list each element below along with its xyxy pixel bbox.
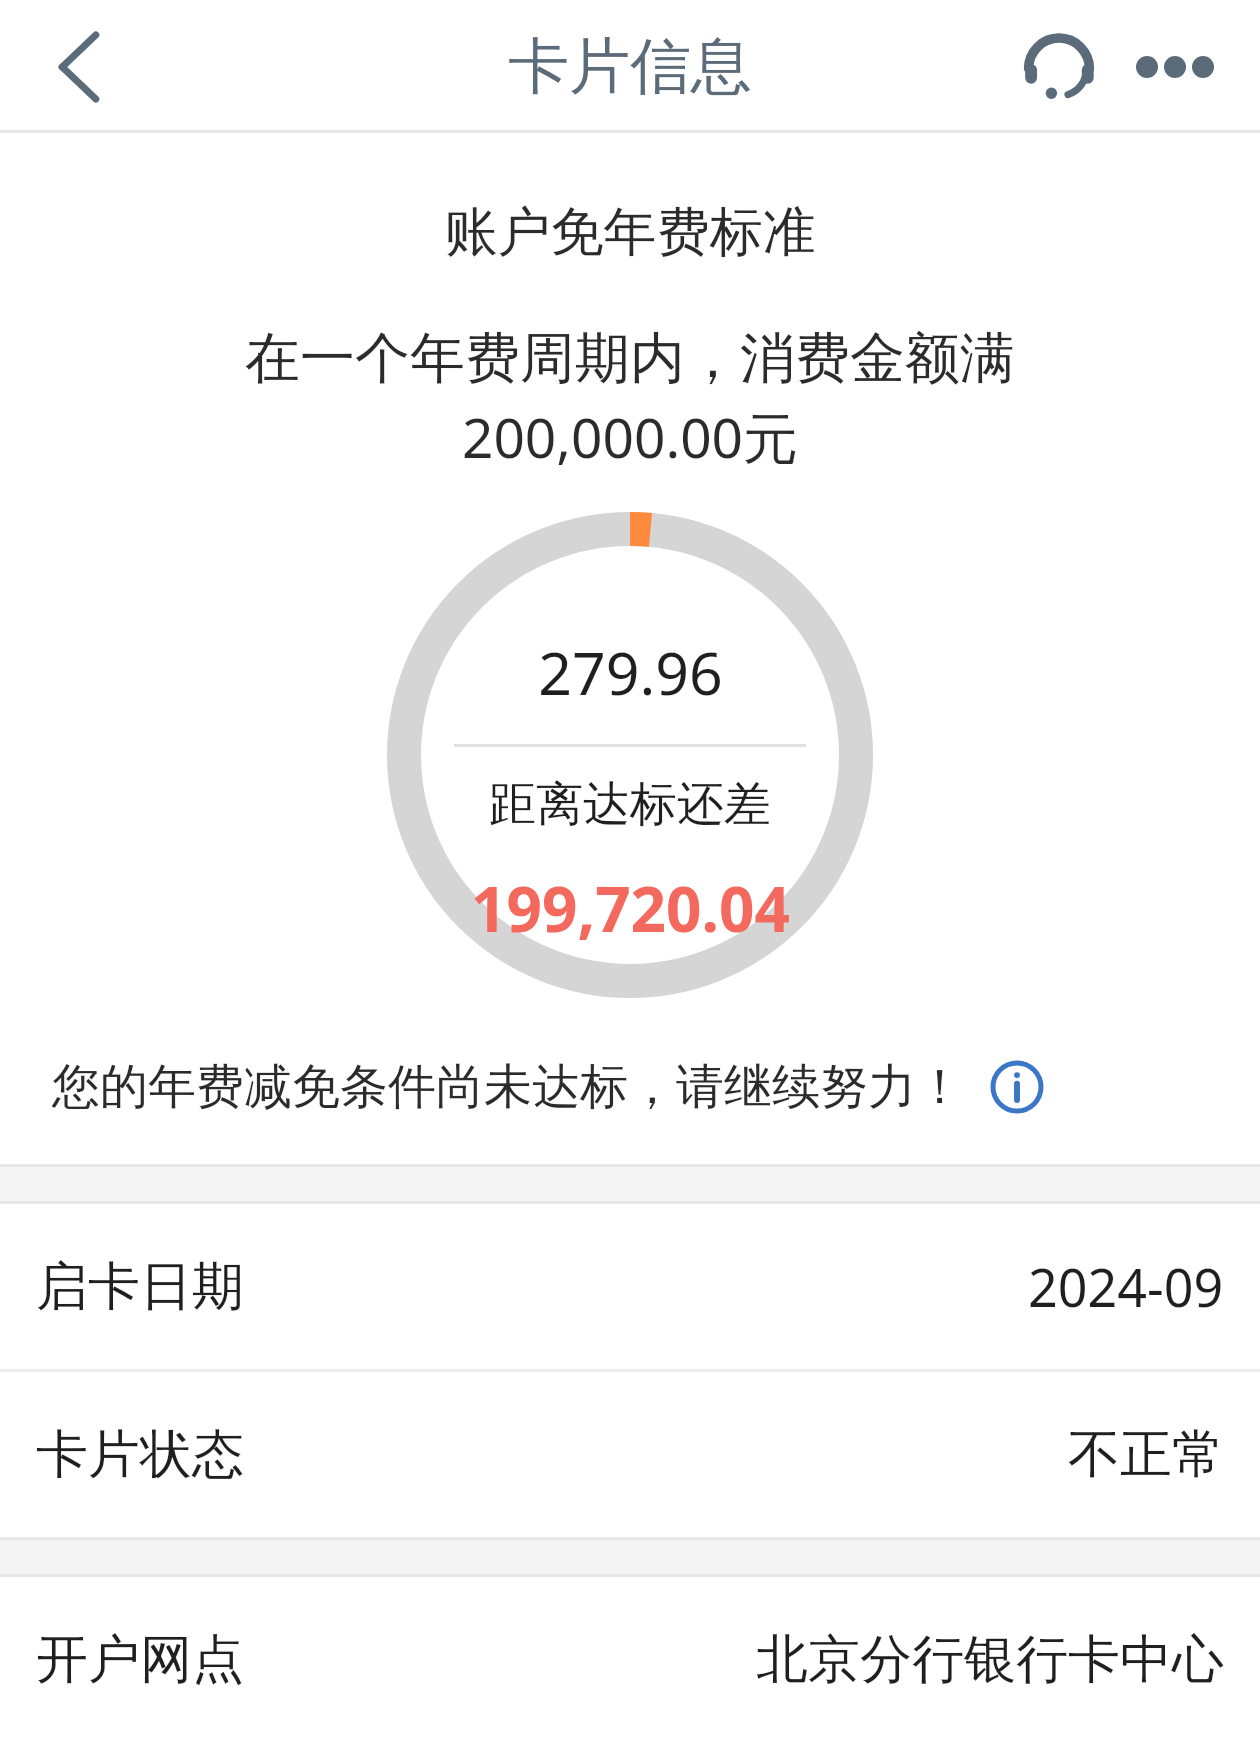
staticText: 199,720.04 (471, 866, 790, 950)
button[interactable]: 开户网点 (0, 1577, 1260, 1742)
staticText: 距离达标还差 (489, 775, 771, 834)
staticText: 279.96 (538, 632, 723, 712)
button[interactable]: Information (978, 1048, 1056, 1126)
button[interactable]: 启卡日期 (0, 1204, 1260, 1369)
staticText: 在一个年费周期内，消费金额满 200,000.00元 (36, 324, 1224, 475)
staticText: 卡片状态 (36, 1422, 244, 1488)
staticText: 启卡日期 (36, 1254, 244, 1320)
staticText: 2024-09 (1028, 1251, 1224, 1322)
button[interactable]: Back (14, 0, 144, 133)
staticText: 卡片信息 (508, 28, 752, 105)
staticText: 不正常 (1068, 1422, 1224, 1488)
button[interactable]: 卡片状态 (0, 1372, 1260, 1537)
staticText: 账户免年费标准 (0, 199, 1260, 266)
button[interactable]: More options (1120, 7, 1230, 127)
staticText: 北京分行银行卡中心 (756, 1627, 1224, 1693)
button[interactable]: Customer service (1004, 7, 1114, 127)
staticText: 您的年费减免条件尚未达标，请继续努力！ (52, 1057, 964, 1117)
staticText: 开户网点 (36, 1627, 244, 1693)
